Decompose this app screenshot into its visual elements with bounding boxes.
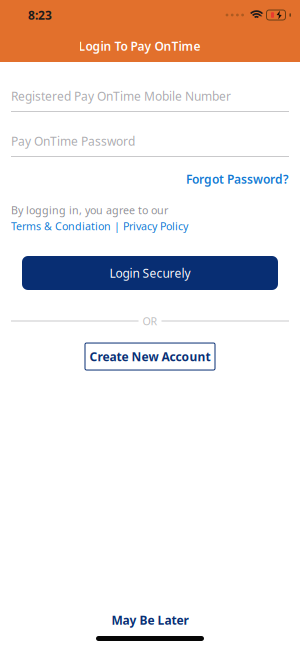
staticText: Login Securely (109, 265, 190, 281)
staticText: Login To Pay OnTime (78, 38, 200, 54)
staticText: Registered Pay OnTime Mobile Number (11, 88, 231, 104)
button[interactable]: May Be Later (111, 612, 188, 628)
staticText: OR (142, 314, 157, 328)
staticText: By logging in, you agree to our (11, 203, 168, 217)
staticText: Terms & Condiation | Privacy Policy (11, 219, 188, 233)
button[interactable]: Forgot Password? (186, 171, 289, 187)
staticText: May Be Later (111, 612, 188, 628)
button[interactable]: Create New Account (85, 343, 215, 370)
button[interactable]: Login Securely (22, 256, 278, 290)
staticText: 8:23 (28, 7, 52, 23)
staticText: Create New Account (89, 348, 210, 364)
staticText: Forgot Password? (186, 171, 289, 187)
staticText: Pay OnTime Password (11, 133, 135, 149)
button[interactable]: Terms & Condiation | Privacy Policy (11, 218, 188, 234)
